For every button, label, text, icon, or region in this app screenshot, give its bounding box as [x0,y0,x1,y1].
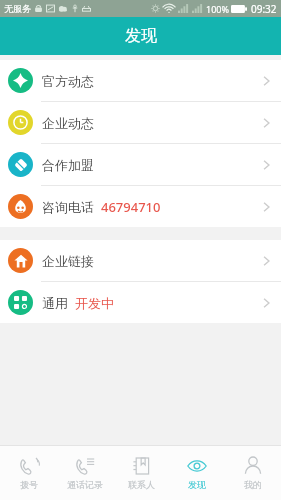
staticText: 咨询电话 [42,199,94,215]
staticText: 企业动态 [42,115,94,131]
staticText: 发现 [188,479,206,490]
staticText: 企业链接 [42,253,94,269]
staticText: 46794710 [101,198,161,216]
button[interactable]: 拨号 [0,446,57,500]
button[interactable]: 通用 [0,282,281,323]
button[interactable]: 企业动态 [0,102,281,143]
button[interactable]: 通话记录 [57,446,113,500]
staticText: 开发中 [75,295,114,311]
staticText: 官方动态 [42,73,94,89]
staticText: 通话记录 [67,479,103,490]
staticText: 无服务 [4,3,31,14]
staticText: 发现 [125,26,157,46]
button[interactable]: 合作加盟 [0,144,281,185]
button[interactable]: 我的 [225,446,281,500]
staticText: 100% [206,3,229,15]
staticText: 我的 [244,479,262,490]
staticText: 联系人 [128,479,155,490]
staticText: 通用 [42,295,68,311]
staticText: 合作加盟 [42,157,94,173]
button[interactable]: 发现 [169,446,225,500]
button[interactable]: 联系人 [113,446,169,500]
button[interactable]: 咨询电话 [0,186,281,227]
staticText: 拨号 [20,479,38,490]
button[interactable]: 官方动态 [0,60,281,101]
staticText: 09:32 [251,2,277,16]
button[interactable]: 企业链接 [0,240,281,281]
